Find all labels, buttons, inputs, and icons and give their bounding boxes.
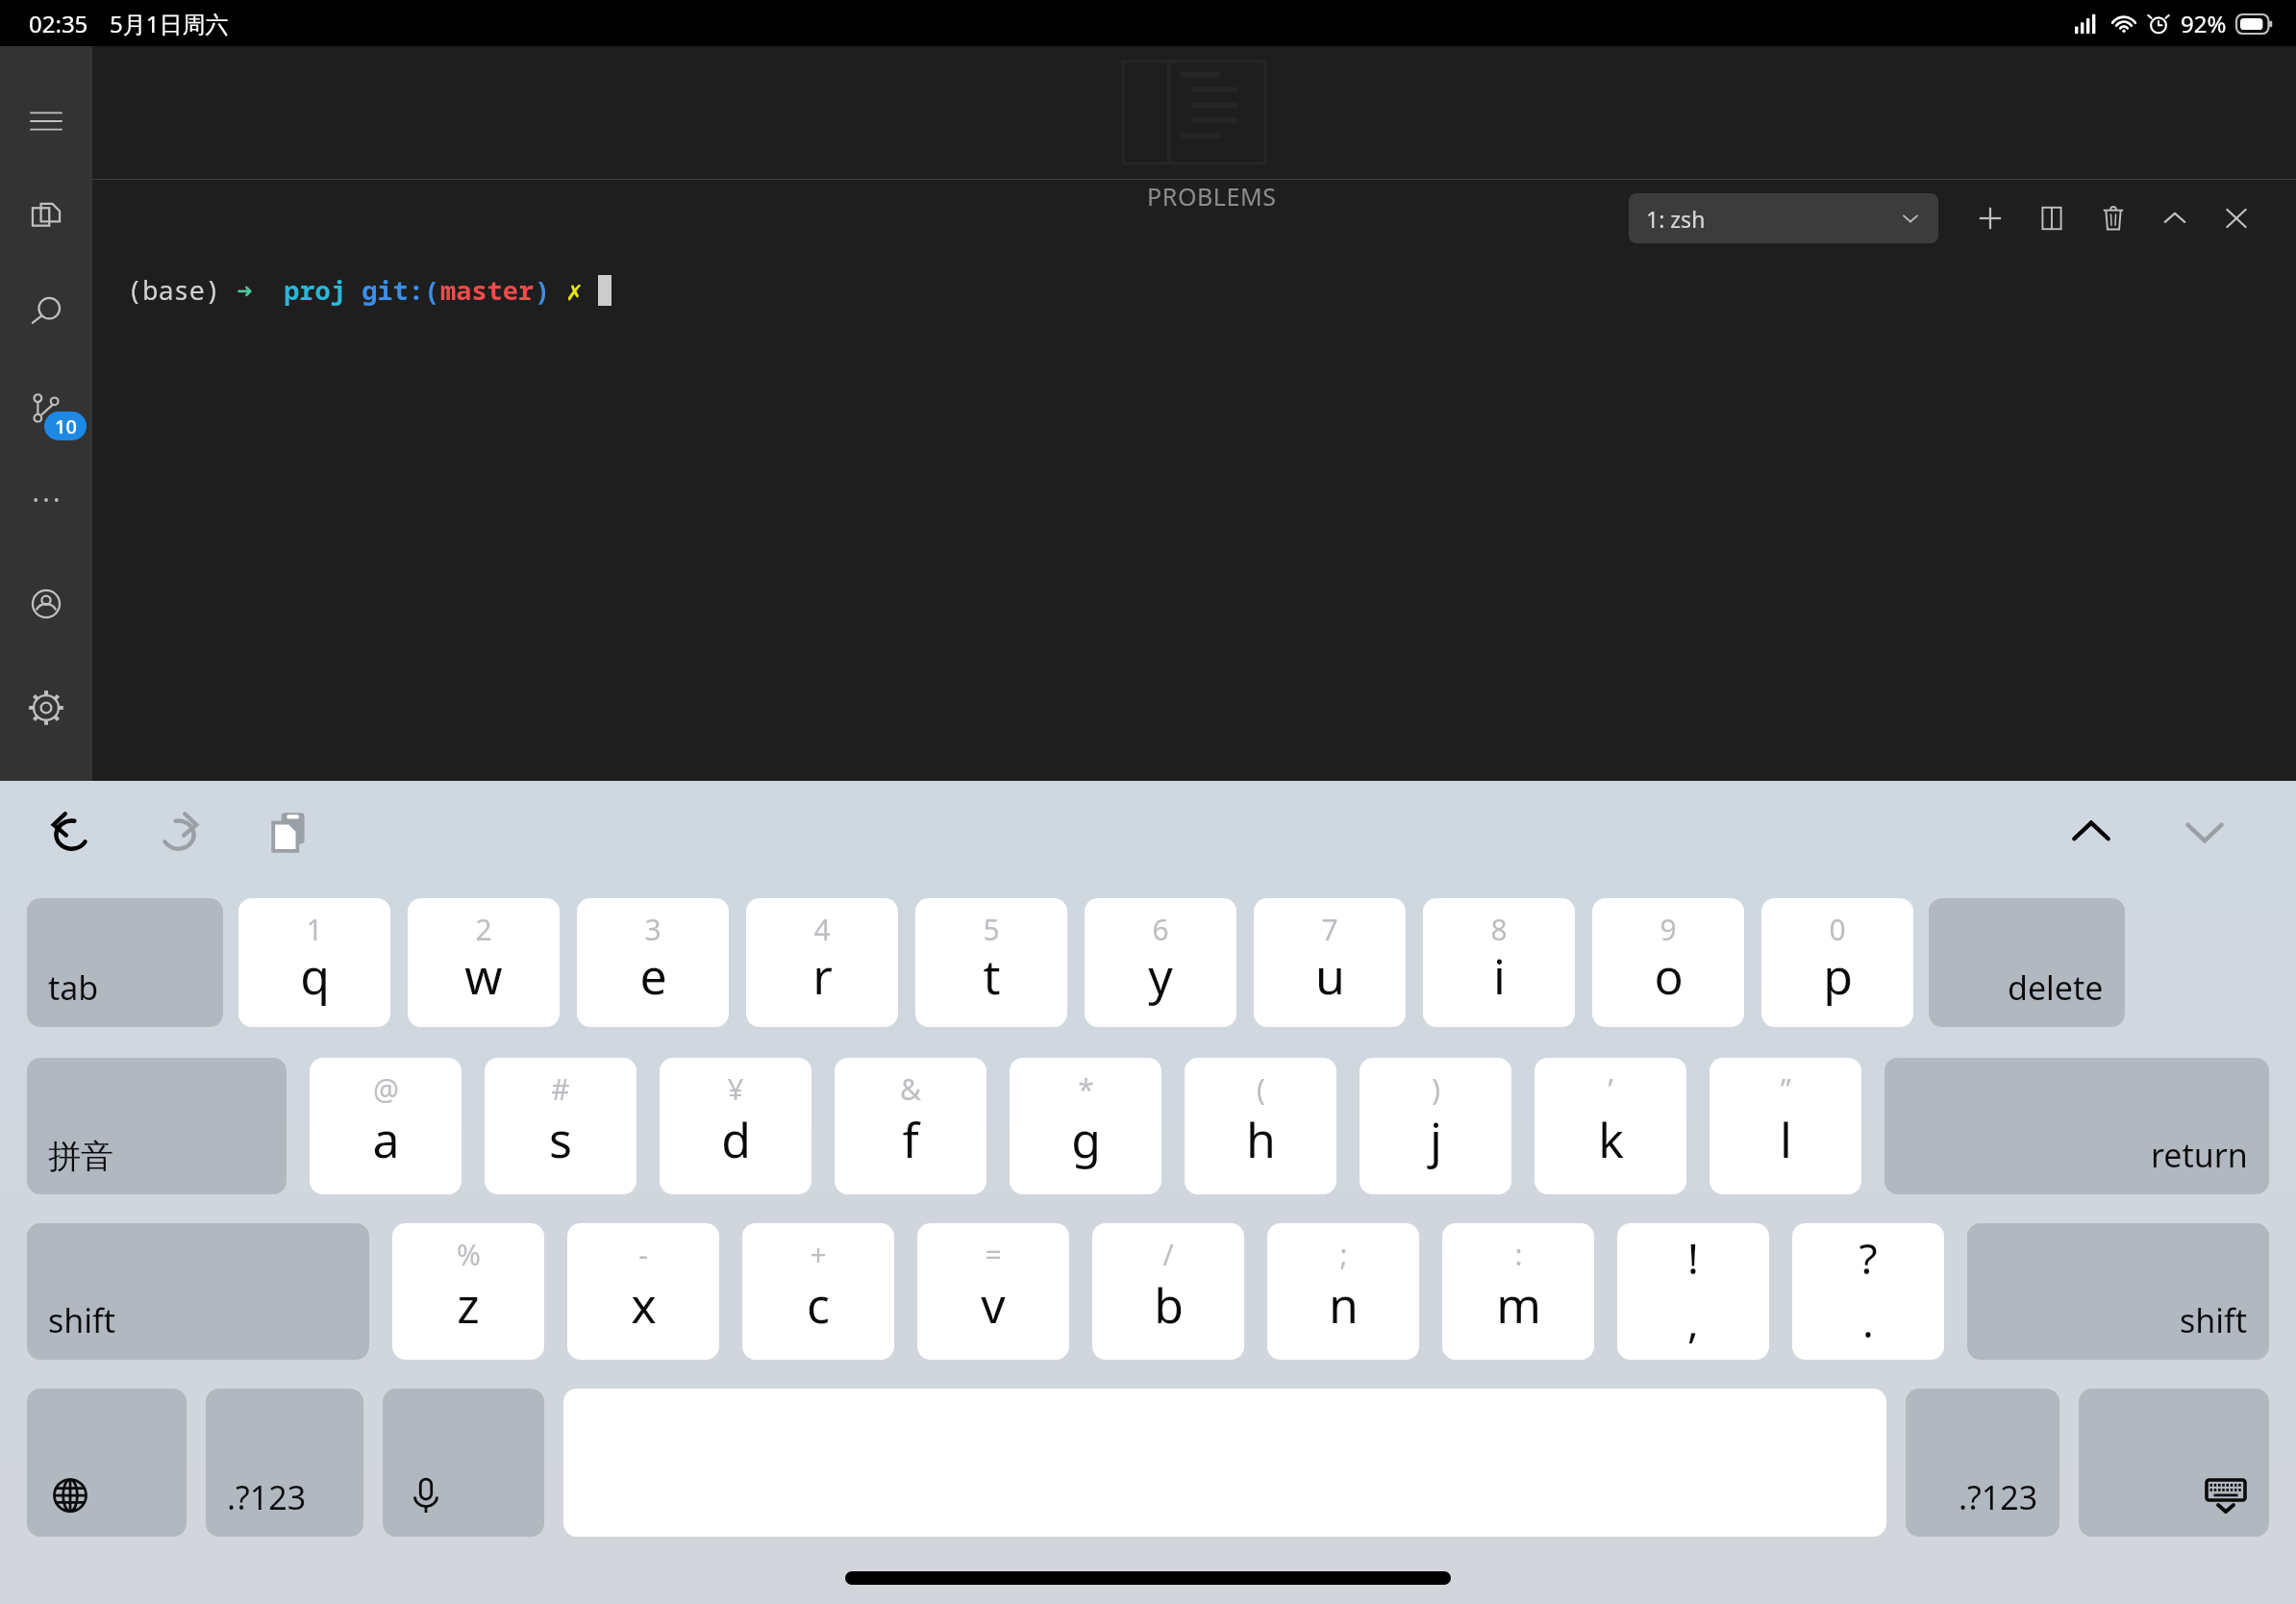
staticText: shift xyxy=(2180,1298,2248,1342)
staticText: ✗ xyxy=(551,272,598,308)
button[interactable]: Account xyxy=(0,569,92,639)
staticText: 1: zsh xyxy=(1646,204,1706,234)
staticText: * xyxy=(1078,1069,1094,1109)
button[interactable]: Kill Terminal xyxy=(2083,193,2144,243)
button[interactable]: Explorer xyxy=(0,183,92,252)
staticText: u xyxy=(1315,943,1345,1009)
button[interactable]: 1 xyxy=(238,898,390,1027)
button[interactable]: return xyxy=(1884,1058,2269,1194)
staticText: r xyxy=(812,943,833,1009)
staticText: s xyxy=(549,1107,572,1172)
staticText: m xyxy=(1496,1272,1541,1338)
button[interactable]: 7 xyxy=(1254,898,1406,1027)
button[interactable]: - xyxy=(567,1223,719,1360)
button[interactable]: shift xyxy=(27,1223,369,1360)
staticText: # xyxy=(551,1069,570,1109)
button[interactable]: & xyxy=(835,1058,986,1194)
button[interactable]: ! xyxy=(1617,1223,1769,1360)
staticText: .?123 xyxy=(1959,1475,2038,1519)
button[interactable]: = xyxy=(917,1223,1069,1360)
staticText: 02:35 xyxy=(29,8,88,39)
staticText: tab xyxy=(48,965,99,1010)
button[interactable]: Settings xyxy=(0,673,92,742)
staticText: b xyxy=(1154,1272,1184,1338)
staticText: % xyxy=(457,1235,481,1274)
staticText: ! xyxy=(1687,1229,1699,1287)
staticText: 2 xyxy=(475,910,492,949)
button[interactable]: New Terminal xyxy=(1959,193,2021,243)
button[interactable]: * xyxy=(1010,1058,1161,1194)
button[interactable]: / xyxy=(1092,1223,1244,1360)
staticText: PROBLEMS xyxy=(1147,180,1277,213)
button[interactable]: 4 xyxy=(746,898,898,1027)
button[interactable]: ’ xyxy=(1535,1058,1686,1194)
button[interactable]: @ xyxy=(310,1058,462,1194)
staticText: + xyxy=(810,1235,827,1274)
button[interactable]: shift xyxy=(1967,1223,2269,1360)
button[interactable]: % xyxy=(392,1223,544,1360)
button[interactable]: ) xyxy=(1360,1058,1511,1194)
button[interactable]: .?123 xyxy=(206,1389,363,1537)
button[interactable]: 2 xyxy=(408,898,560,1027)
button[interactable]: 1: zsh xyxy=(1629,193,1938,243)
button[interactable]: ( xyxy=(1185,1058,1336,1194)
staticText: j xyxy=(1430,1107,1442,1172)
button[interactable]: + xyxy=(742,1223,894,1360)
button[interactable]: # xyxy=(485,1058,636,1194)
staticText: o xyxy=(1654,943,1684,1009)
button[interactable]: : xyxy=(1442,1223,1594,1360)
staticText: k xyxy=(1598,1107,1624,1172)
button[interactable]: Search xyxy=(0,279,92,348)
button[interactable]: Switch keyboard xyxy=(27,1389,187,1537)
button[interactable]: 0 xyxy=(1761,898,1913,1027)
button[interactable]: tab xyxy=(27,898,223,1027)
button[interactable]: .?123 xyxy=(1906,1389,2059,1537)
button[interactable]: ” xyxy=(1710,1058,1861,1194)
button[interactable]: Source Control xyxy=(0,375,92,444)
button[interactable]: Collapse Panel xyxy=(2144,193,2206,243)
button[interactable]: Next xyxy=(2173,801,2236,865)
staticText: c xyxy=(807,1272,830,1338)
button[interactable]: Menu xyxy=(0,87,92,156)
staticText: x xyxy=(631,1272,657,1338)
staticText: ? xyxy=(1859,1229,1878,1287)
button[interactable]: 5 xyxy=(915,898,1067,1027)
staticText: l xyxy=(1780,1107,1792,1172)
button[interactable]: Split Terminal xyxy=(2021,193,2083,243)
staticText: 10 xyxy=(55,414,77,439)
staticText: t xyxy=(983,943,1001,1009)
button[interactable]: 3 xyxy=(577,898,729,1027)
button[interactable]: 拼音 xyxy=(27,1058,287,1194)
button[interactable]: Paste xyxy=(258,801,321,865)
staticText: .?123 xyxy=(227,1475,307,1519)
staticText: shift xyxy=(48,1298,116,1342)
button[interactable]: ; xyxy=(1267,1223,1419,1360)
staticText: 7 xyxy=(1321,910,1338,949)
button[interactable]: Dictation xyxy=(383,1389,544,1537)
button[interactable]: ¥ xyxy=(660,1058,811,1194)
staticText: q xyxy=(300,943,330,1009)
button[interactable]: More xyxy=(0,465,92,535)
staticText: h xyxy=(1246,1107,1276,1172)
button[interactable]: Hide keyboard xyxy=(2079,1389,2269,1537)
staticText: 9 xyxy=(1660,910,1677,949)
staticText: 3 xyxy=(644,910,661,949)
button[interactable]: Redo xyxy=(148,801,212,865)
staticText: = xyxy=(985,1235,1002,1274)
button[interactable]: Close Panel xyxy=(2206,193,2267,243)
staticText: a xyxy=(372,1107,400,1172)
button[interactable]: delete xyxy=(1929,898,2125,1027)
staticText: e xyxy=(639,943,667,1009)
staticText: 1 xyxy=(306,910,323,949)
button[interactable]: ? xyxy=(1792,1223,1944,1360)
staticText: ) xyxy=(535,272,551,308)
button[interactable]: 8 xyxy=(1423,898,1575,1027)
button[interactable]: 6 xyxy=(1085,898,1236,1027)
button[interactable]: Undo xyxy=(38,801,102,865)
button[interactable]: PROBLEMS xyxy=(127,180,2296,229)
staticText: @ xyxy=(373,1069,399,1109)
button[interactable]: 9 xyxy=(1592,898,1744,1027)
button[interactable]: Previous xyxy=(2059,801,2123,865)
staticText: v xyxy=(981,1272,1006,1338)
